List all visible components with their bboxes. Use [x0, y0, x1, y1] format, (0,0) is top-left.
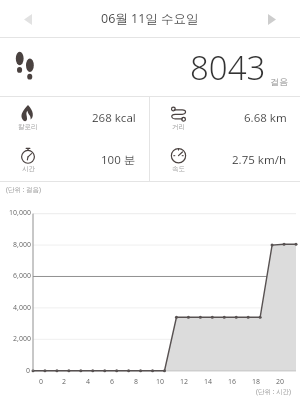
button[interactable]: 칼로리 [0, 97, 149, 139]
staticText: 100 분 [101, 152, 136, 168]
staticText: 0 [26, 366, 31, 376]
staticText: 거리 [172, 123, 185, 131]
staticText: 06월 11일 수요일 [101, 10, 199, 27]
button[interactable]: Next day [256, 3, 288, 35]
staticText: 시간 [22, 165, 35, 173]
staticText: 6.68 km [244, 110, 287, 126]
staticText: (단위 : 걸음) [6, 185, 42, 194]
button[interactable]: 시간 [0, 139, 149, 181]
staticText: 10,000 [9, 208, 31, 218]
staticText: 8,000 [13, 240, 31, 250]
staticText: 속도 [172, 165, 185, 173]
staticText: 8 [134, 377, 139, 387]
button[interactable]: Previous day [12, 3, 44, 35]
staticText: 2,000 [13, 334, 31, 344]
staticText: 6 [110, 377, 115, 387]
button[interactable]: 거리 [150, 97, 300, 139]
staticText: 6,000 [13, 271, 31, 281]
staticText: 16 [228, 377, 237, 387]
button[interactable]: 8043 [0, 38, 300, 96]
staticText: 0 [39, 377, 44, 387]
staticText: 20 [276, 377, 285, 387]
staticText: 칼로리 [18, 123, 38, 131]
staticText: 10 [156, 377, 165, 387]
staticText: 268 kcal [92, 110, 136, 126]
staticText: 12 [180, 377, 189, 387]
staticText: 14 [204, 377, 213, 387]
staticText: 4,000 [13, 303, 31, 313]
staticText: (단위 : 시간) [256, 387, 292, 396]
staticText: 2.75 km/h [232, 152, 287, 168]
button[interactable]: 속도 [150, 139, 300, 181]
staticText: 4 [86, 377, 91, 387]
staticText: 18 [252, 377, 261, 387]
staticText: 2 [62, 377, 67, 387]
staticText: 걸음 [270, 76, 288, 87]
staticText: 8043 [190, 45, 266, 90]
